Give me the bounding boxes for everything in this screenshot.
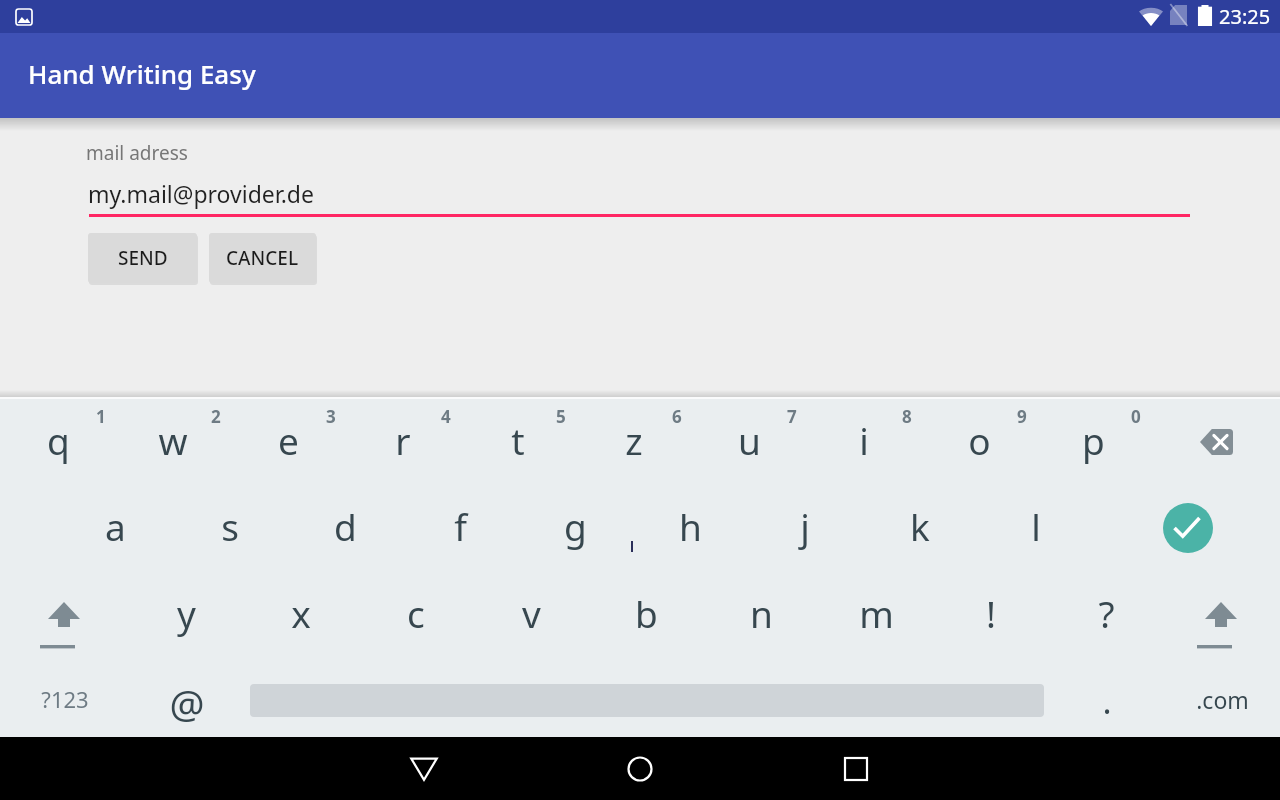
button[interactable]: @ [133,673,241,731]
button[interactable]: Home [623,752,657,786]
staticText: 7 [787,405,797,428]
staticText: 23:25 [1219,3,1271,30]
staticText: z [625,415,643,465]
staticText: 6 [672,405,682,428]
staticText: u [738,415,761,465]
staticText: f [454,501,467,551]
button[interactable]: a [61,497,169,555]
button[interactable]: r [349,411,457,469]
staticText: s [221,501,239,551]
staticText: c [407,588,425,638]
staticText: my.mail@provider.de [88,178,314,209]
staticText: d [334,501,357,551]
button[interactable]: Back [407,752,441,786]
button[interactable]: Enter [1163,503,1213,553]
staticText: . [1102,678,1112,724]
staticText: x [291,588,311,638]
staticText: ? [1098,588,1115,638]
staticText: Hand Writing Easy [28,56,256,91]
staticText: 8 [902,405,912,428]
staticText: SEND [118,245,168,271]
button[interactable]: CANCEL [209,233,316,283]
staticText: 4 [441,405,451,428]
button[interactable]: f [406,497,514,555]
button[interactable]: k [866,497,974,555]
staticText: j [800,501,810,551]
staticText: n [750,588,773,638]
button[interactable]: i [810,411,918,469]
staticText: h [679,501,702,551]
button[interactable]: o [925,411,1033,469]
button[interactable]: u [695,411,803,469]
button[interactable]: Recent apps [839,752,873,786]
button[interactable]: .com [1168,670,1276,728]
button[interactable]: y [132,584,240,642]
staticText: @ [169,676,205,729]
staticText: ?123 [41,684,89,714]
staticText: i [859,415,869,465]
staticText: v [522,588,541,638]
button[interactable]: v [477,584,585,642]
staticText: m [859,588,894,638]
button[interactable]: ? [1052,584,1160,642]
button[interactable]: my.mail@provider.de [89,175,1190,217]
button[interactable]: n [707,584,815,642]
button[interactable]: Backspace [1200,429,1233,455]
button[interactable]: SEND [88,233,197,283]
staticText: ! [986,588,996,638]
staticText: k [910,501,930,551]
staticText: 5 [556,405,566,428]
staticText: l [1031,501,1041,551]
button[interactable]: . [1053,672,1161,730]
button[interactable]: b [592,584,700,642]
button[interactable]: t [464,411,572,469]
staticText: g [564,501,587,551]
button[interactable]: Hand Writing Easy [0,33,1280,118]
button[interactable]: p [1039,411,1147,469]
other: Screenshot notification [15,8,33,26]
staticText: p [1082,415,1105,465]
button[interactable]: s [176,497,284,555]
staticText: mail adress [86,140,188,166]
button[interactable]: m [822,584,930,642]
button[interactable]: e [234,411,342,469]
staticText: t [511,415,525,465]
staticText: e [278,415,299,465]
button[interactable]: ! [937,584,1045,642]
staticText: b [635,588,658,638]
button[interactable]: j [751,497,859,555]
button[interactable]: w [119,411,227,469]
staticText: 1 [96,405,106,428]
button[interactable]: d [291,497,399,555]
staticText: q [47,415,70,465]
staticText: 3 [326,405,336,428]
button[interactable]: x [247,584,355,642]
staticText: a [105,501,126,551]
staticText: CANCEL [226,245,299,271]
button[interactable]: h [636,497,744,555]
button[interactable]: ?123 [11,670,119,728]
staticText: w [158,415,188,465]
staticText: .com [1196,684,1249,715]
staticText: 9 [1017,405,1027,428]
staticText: r [395,415,411,465]
button[interactable]: q [4,411,112,469]
button[interactable]: Shift [36,597,92,653]
staticText: o [968,415,991,465]
staticText: y [177,588,196,638]
button[interactable]: g [521,497,629,555]
button[interactable]: Shift [1193,597,1249,653]
button[interactable]: l [982,497,1090,555]
button[interactable]: c [362,584,470,642]
staticText: 0 [1131,405,1141,428]
button[interactable]: z [580,411,688,469]
staticText: 2 [211,405,221,428]
